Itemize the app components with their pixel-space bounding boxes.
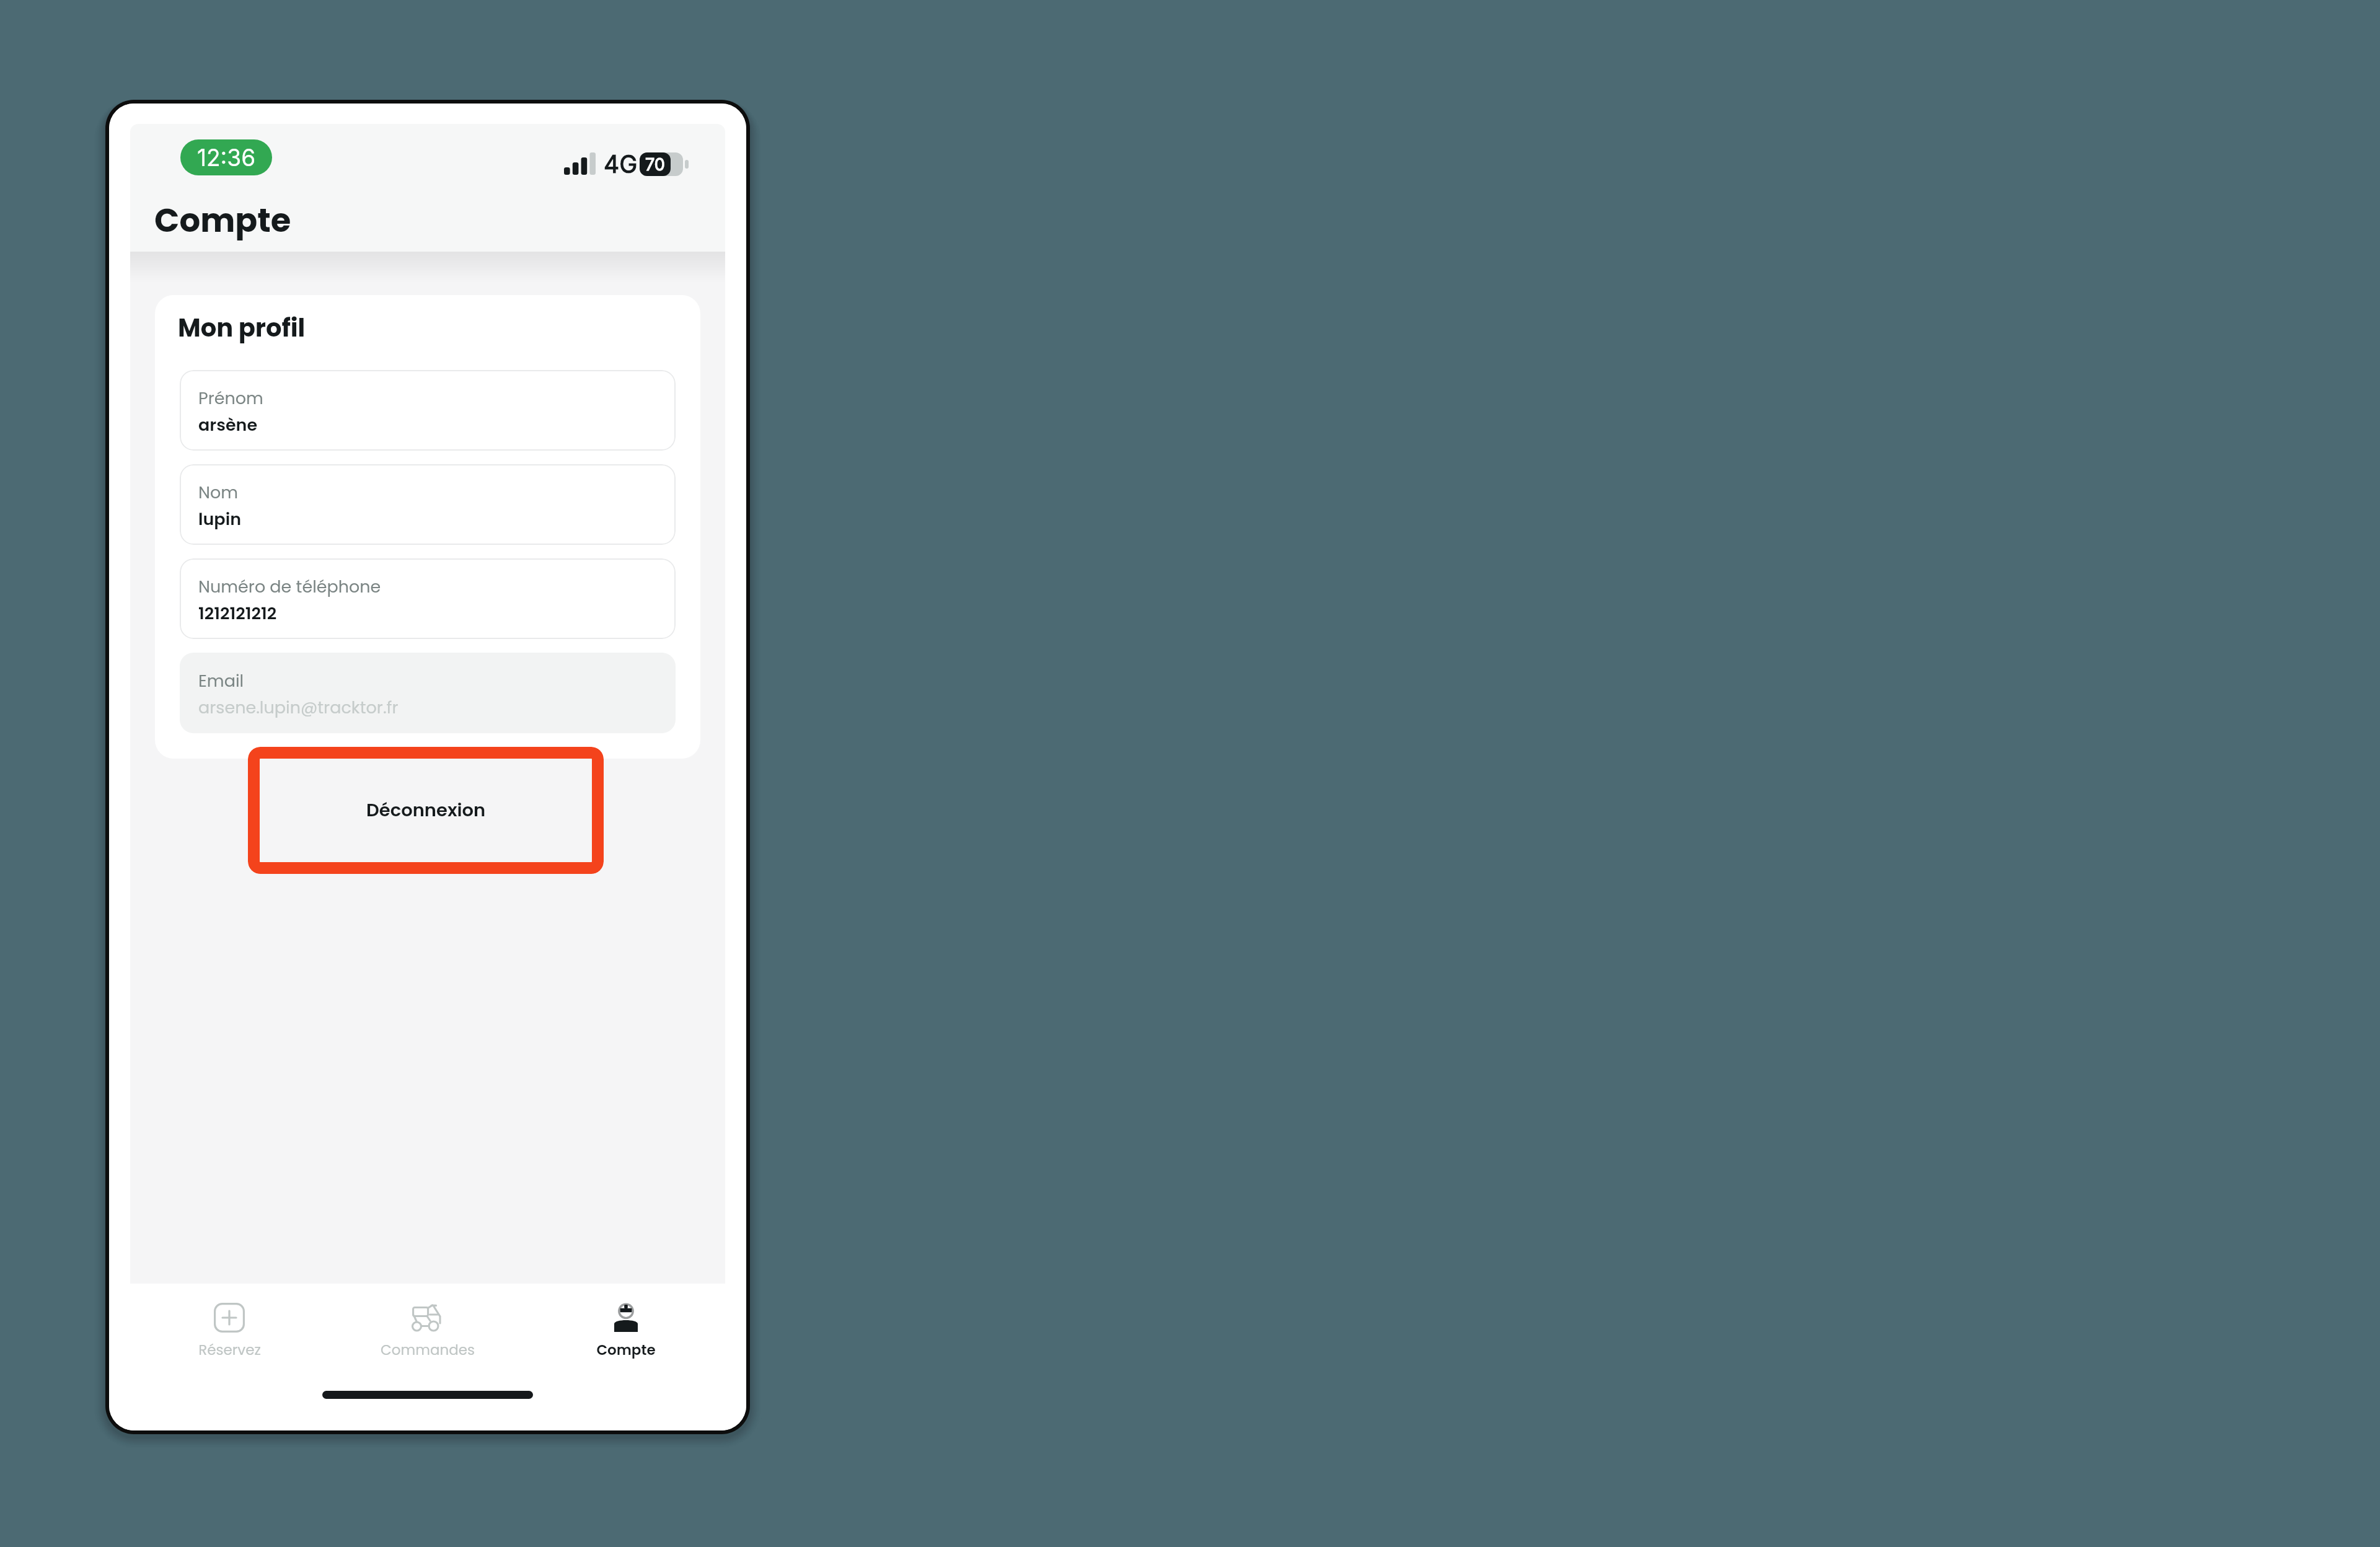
button[interactable]: Nom (180, 464, 676, 545)
staticText: Numéro de téléphone (198, 575, 381, 599)
staticText: Prénom (198, 387, 263, 410)
staticText: Mon profil (178, 311, 306, 345)
staticText: lupin (198, 508, 242, 531)
button[interactable]: Email (180, 653, 676, 733)
staticText: Nom (198, 481, 239, 505)
staticText: 12:36 (197, 144, 256, 172)
button[interactable]: Account (527, 1303, 725, 1360)
staticText: 70 (645, 154, 665, 175)
button[interactable]: Reserve (130, 1303, 328, 1360)
button[interactable]: Prénom (180, 370, 676, 451)
staticText: 1212121212 (198, 602, 277, 625)
other: Account (613, 1303, 639, 1332)
other: Orders (412, 1305, 443, 1331)
button[interactable]: Orders (328, 1303, 527, 1360)
staticText: Commandes (381, 1340, 475, 1360)
staticText: 4G (604, 149, 638, 178)
staticText: Compte (154, 197, 291, 243)
other: Reserve (214, 1303, 245, 1333)
staticText: arsène (198, 413, 258, 437)
button[interactable]: Numéro de téléphone (180, 558, 676, 639)
staticText: Compte (596, 1340, 656, 1360)
staticText: Déconnexion (366, 798, 486, 823)
staticText: arsene.lupin@tracktor.fr (198, 696, 399, 720)
staticText: Email (198, 669, 244, 693)
button[interactable]: Déconnexion (248, 747, 604, 874)
staticText: Réservez (198, 1340, 261, 1360)
